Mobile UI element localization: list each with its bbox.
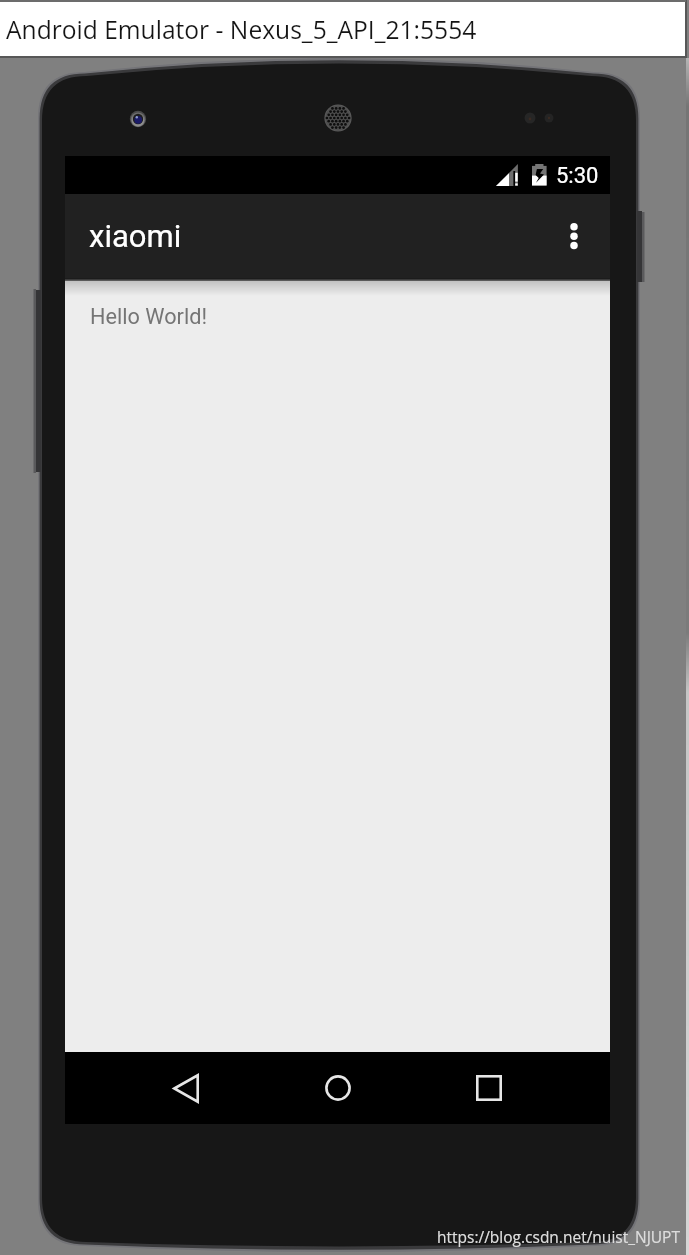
staticText: xiaomi [89,218,182,254]
button[interactable]: Recents [453,1052,525,1124]
staticText: Hello World! [90,304,207,329]
button[interactable]: More options [547,209,601,263]
staticText: https://blog.csdn.net/nuist_NJUPT [437,1226,680,1247]
staticText: Android Emulator - Nexus_5_API_21:5554 [6,13,477,47]
button[interactable]: Home [302,1052,374,1124]
button[interactable]: Back [150,1052,222,1124]
staticText: 5:30 [556,163,599,189]
